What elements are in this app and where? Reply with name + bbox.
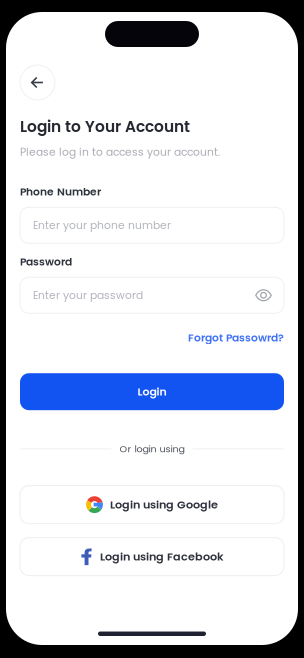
staticText: Or login using bbox=[119, 442, 184, 456]
button[interactable]: Login bbox=[20, 373, 284, 410]
button[interactable]: Login using Facebook bbox=[20, 538, 284, 576]
staticText: Enter your phone number bbox=[33, 218, 171, 233]
staticText: Login using Facebook bbox=[100, 549, 224, 564]
staticText: Forgot Passowrd? bbox=[188, 330, 284, 345]
staticText: Phone Number bbox=[20, 184, 101, 199]
staticText: Login using Google bbox=[110, 497, 218, 512]
button[interactable]: Login using Google bbox=[20, 486, 284, 524]
staticText: Password bbox=[20, 254, 72, 269]
staticText: Login to Your Account bbox=[20, 116, 190, 137]
button[interactable]: Forgot Passowrd? bbox=[188, 330, 284, 345]
staticText: Login bbox=[137, 384, 166, 399]
staticText: Enter your password bbox=[33, 288, 143, 303]
staticText: Please log in to access your account. bbox=[20, 144, 220, 159]
button[interactable]: Back bbox=[20, 65, 55, 100]
